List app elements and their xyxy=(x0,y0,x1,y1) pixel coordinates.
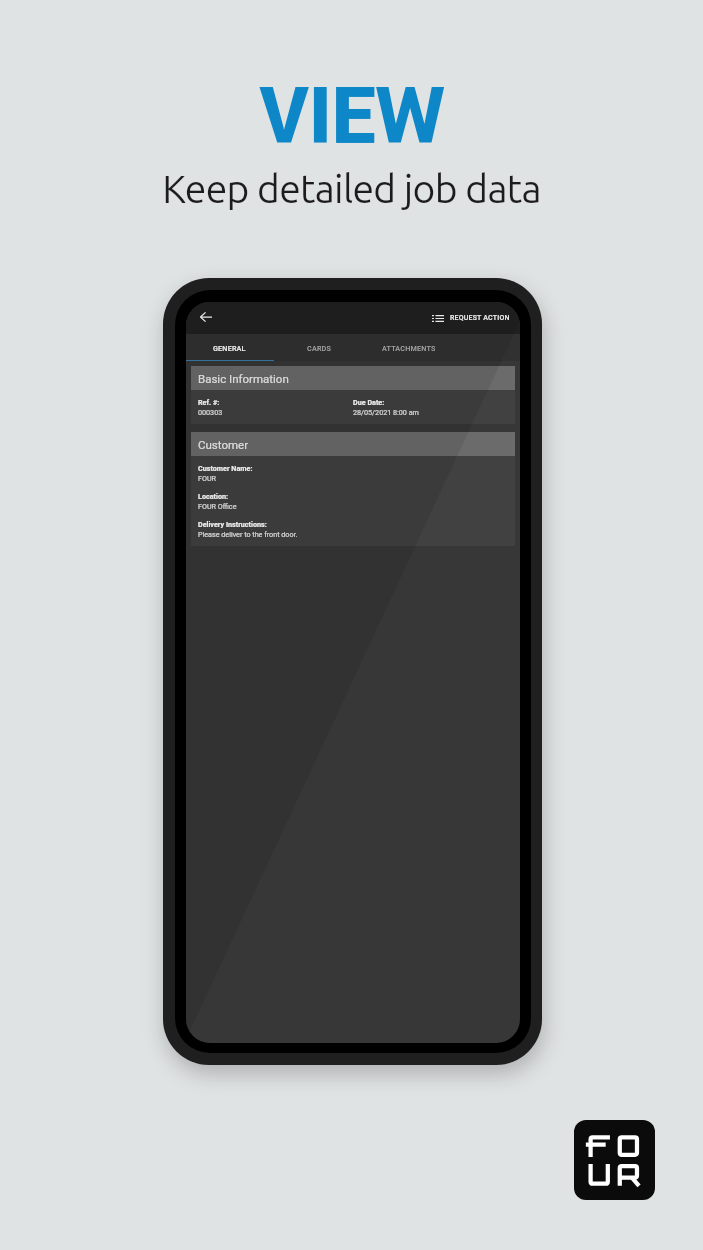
staticText: FOUR Office xyxy=(198,502,237,510)
staticText: GENERAL xyxy=(213,344,246,352)
staticText: Location: xyxy=(198,492,229,500)
button[interactable]: ATTACHMENTS xyxy=(364,334,454,361)
staticText: Customer xyxy=(198,438,249,451)
staticText: FOUR xyxy=(198,474,217,482)
staticText: Ref. #: xyxy=(198,398,220,406)
button[interactable]: FOUR logo xyxy=(574,1120,655,1200)
staticText: 28/05/2021 8:00 am xyxy=(353,408,419,416)
staticText: Due Date: xyxy=(353,398,385,406)
staticText: ATTACHMENTS xyxy=(382,344,436,352)
staticText: CARDS xyxy=(307,344,332,352)
staticText: Keep detailed job data xyxy=(162,167,541,211)
button[interactable]: REQUEST ACTION xyxy=(424,302,520,334)
staticText: Basic Information xyxy=(198,372,289,385)
staticText: REQUEST ACTION xyxy=(450,314,510,322)
button[interactable]: GENERAL xyxy=(186,334,274,361)
staticText: Please deliver to the front door. xyxy=(198,530,298,538)
staticText: VIEW xyxy=(259,62,445,174)
staticText: 000303 xyxy=(198,408,223,416)
button[interactable]: CARDS xyxy=(274,334,364,361)
button[interactable]: Navigate back xyxy=(190,302,222,333)
staticText: Customer Name: xyxy=(198,464,253,472)
staticText: Delivery Instructions: xyxy=(198,520,267,528)
